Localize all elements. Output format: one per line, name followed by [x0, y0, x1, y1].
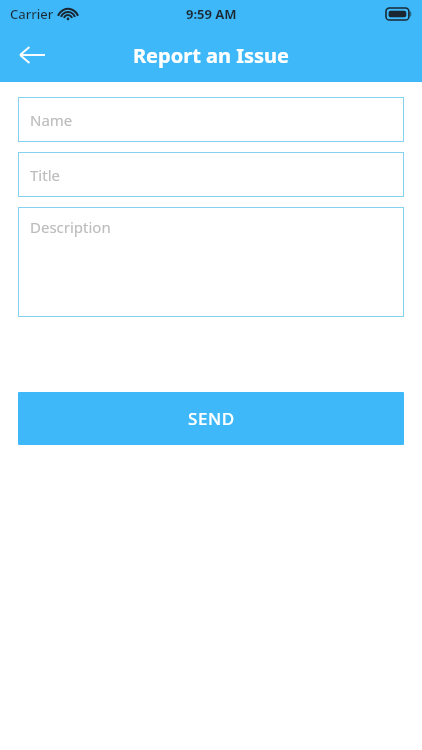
staticText: Title	[30, 165, 60, 185]
button[interactable]: SEND	[18, 392, 404, 445]
button[interactable]: Description	[18, 207, 404, 317]
button[interactable]: Name	[18, 97, 404, 142]
staticText: Carrier	[10, 5, 54, 23]
button[interactable]: Back	[10, 33, 54, 77]
staticText: Description	[30, 217, 111, 237]
staticText: SEND	[188, 407, 235, 430]
staticText: 9:59 AM	[186, 5, 237, 23]
button[interactable]: Title	[18, 152, 404, 197]
staticText: Report an Issue	[133, 42, 289, 69]
staticText: Name	[30, 110, 73, 130]
